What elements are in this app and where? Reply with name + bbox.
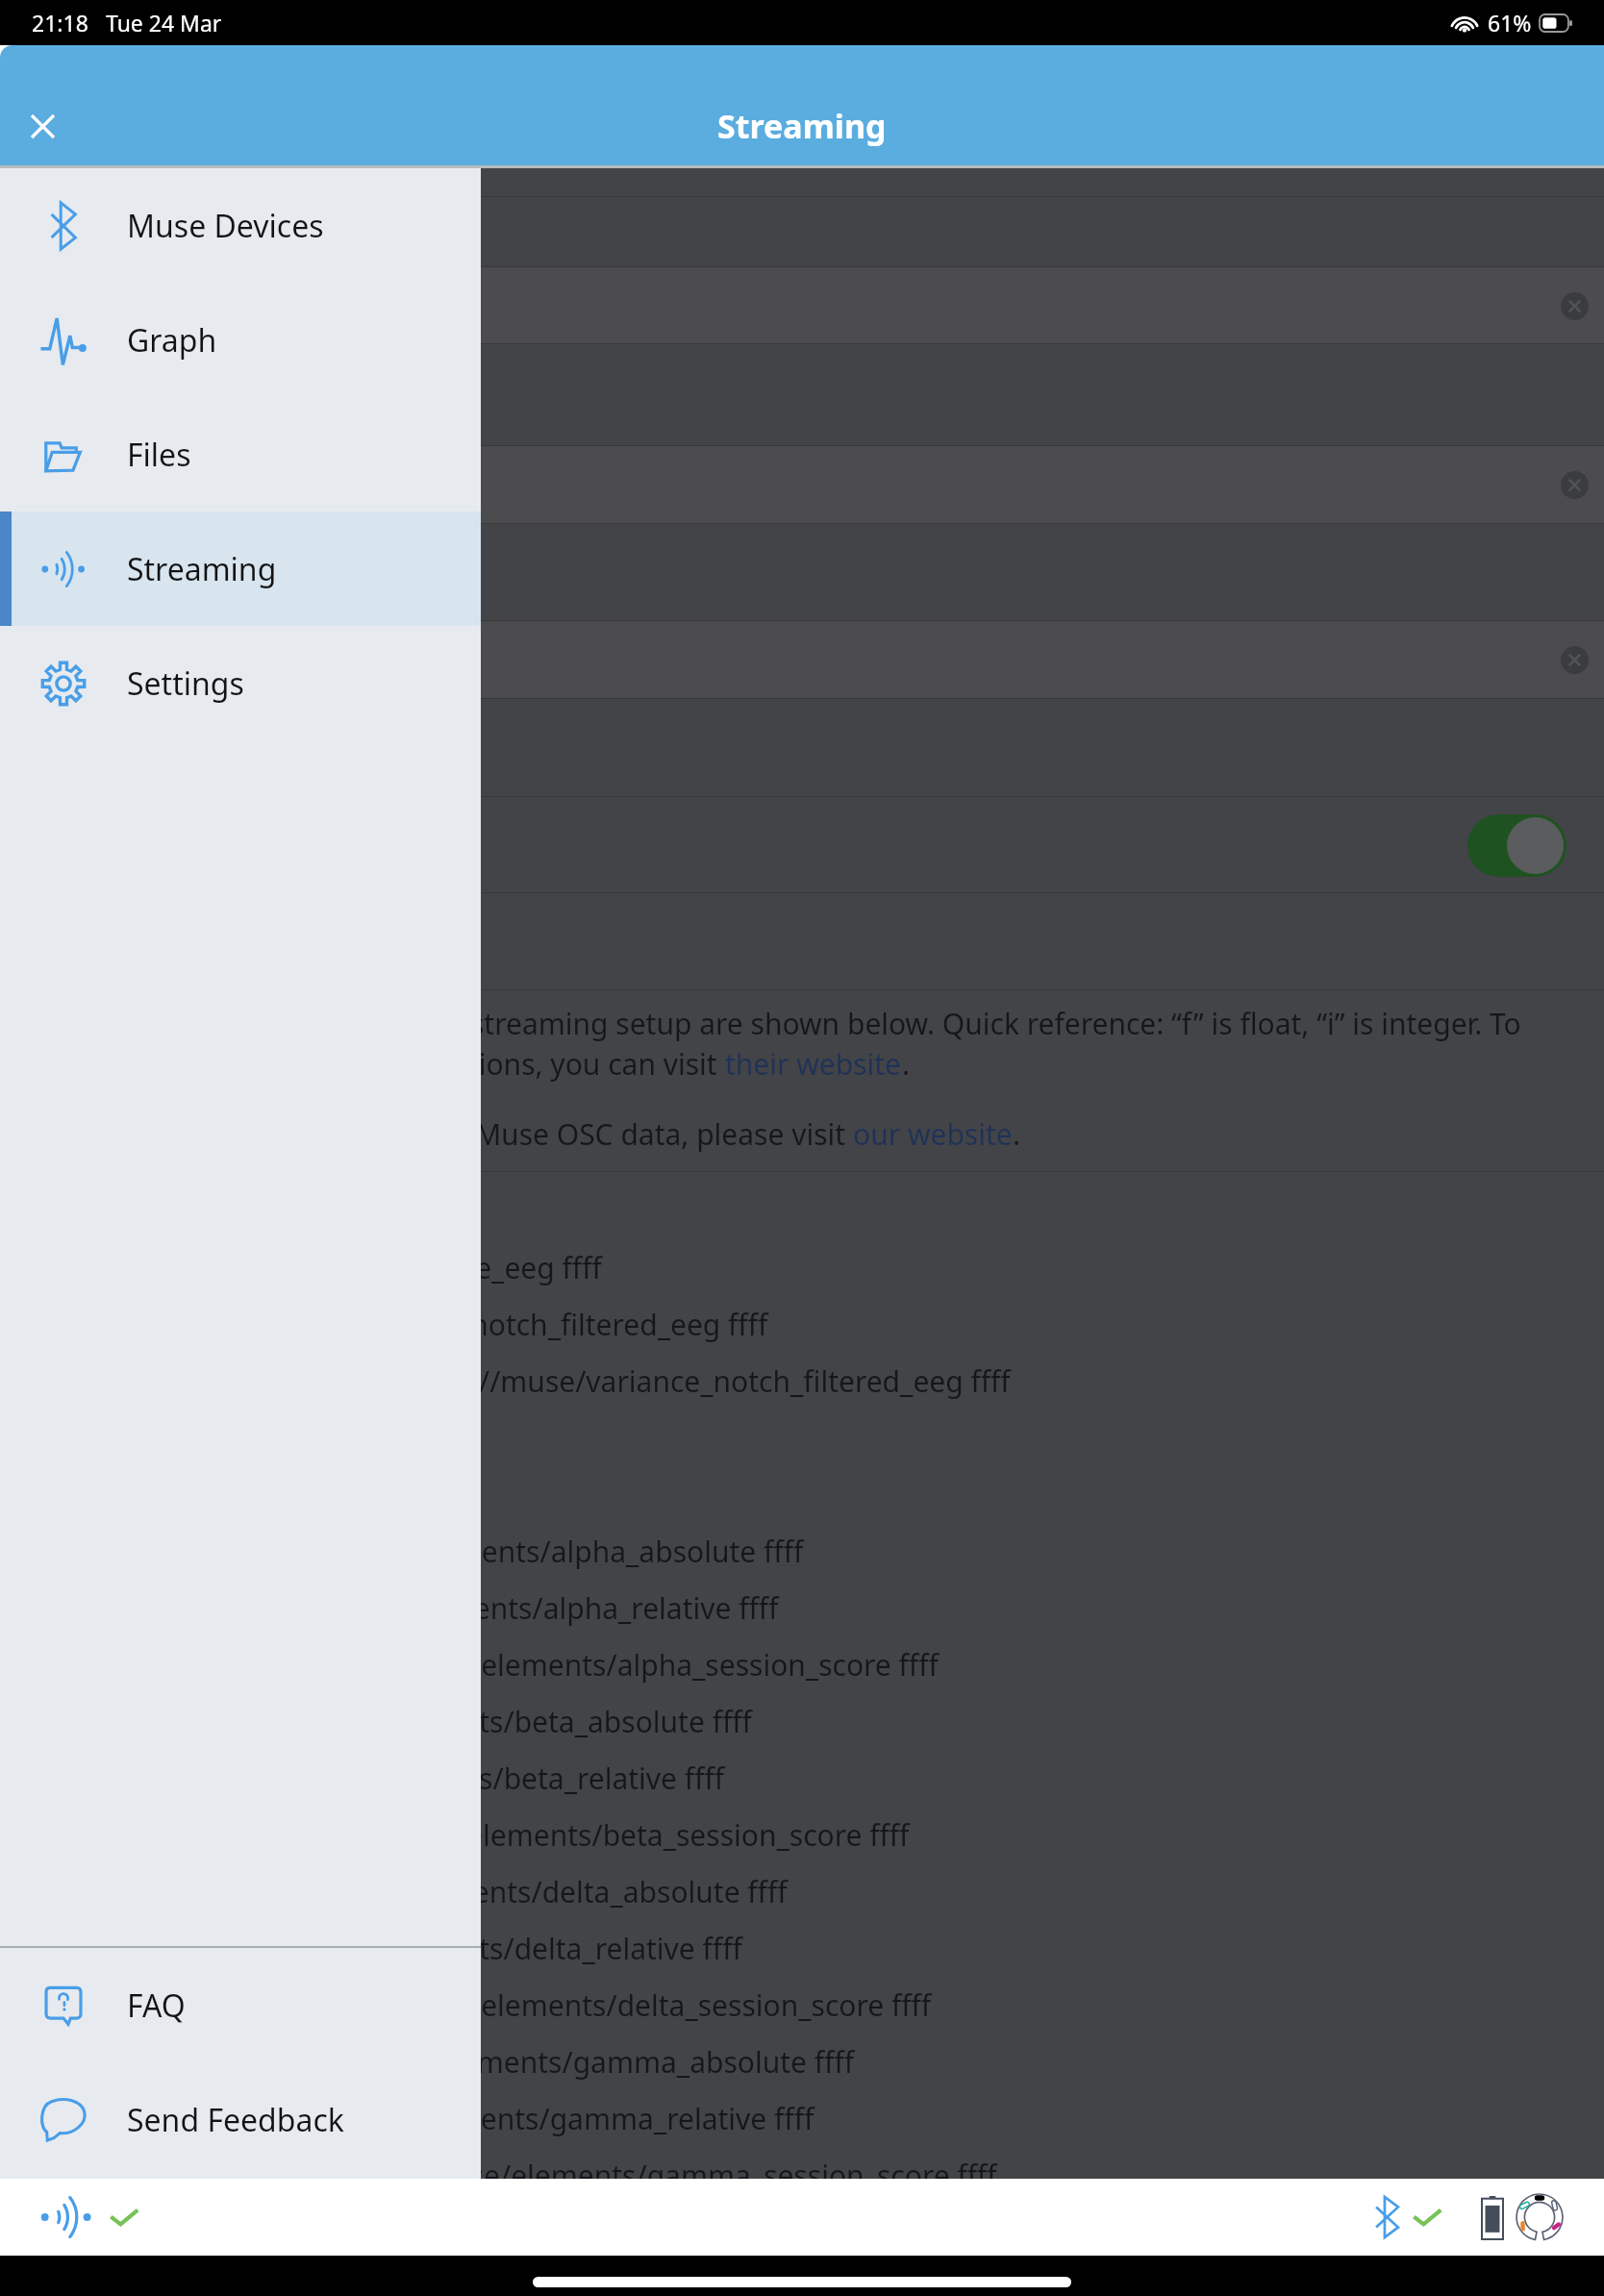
staticText: Settings xyxy=(127,662,244,705)
staticText: 21:18 xyxy=(32,8,88,37)
button[interactable]: their website xyxy=(725,1044,902,1084)
button[interactable]: Files xyxy=(0,397,481,512)
staticText: Muse Devices xyxy=(127,205,324,247)
staticText: Values in the current streaming setup ar… xyxy=(183,1004,1521,1043)
button[interactable]: Clear xyxy=(1561,471,1589,499)
button[interactable]: FAQ xyxy=(0,1948,481,2062)
staticText: 61% xyxy=(1488,8,1532,37)
staticText: /muse/variance_eeg ffff xyxy=(281,1248,602,1287)
staticText: FAQ xyxy=(127,1984,186,2027)
staticText: /muse/elements/alpha_session_score ffff xyxy=(385,1645,939,1685)
staticText: /muse/elements/delta_absolute ffff xyxy=(310,1872,788,1911)
button[interactable]: Send Feedback xyxy=(0,2062,481,2177)
staticText: Graph xyxy=(127,319,217,362)
button[interactable]: Close xyxy=(13,96,72,156)
staticText: For more details on the Muse OSC data, p… xyxy=(152,1114,853,1154)
button[interactable]: Clear xyxy=(1561,646,1589,674)
button[interactable]: our website xyxy=(853,1114,1013,1154)
staticText: /muse/elements/gamma_absolute ffff xyxy=(340,2042,855,2082)
staticText: learn more about OSC definitions, you ca… xyxy=(84,1044,725,1084)
staticText: Streaming xyxy=(127,548,277,590)
button[interactable]: Clear xyxy=(1561,292,1589,320)
staticText: /muse/elements/alpha_relative ffff xyxy=(311,1588,779,1628)
staticText: /muse/elements/beta_absolute ffff xyxy=(282,1702,752,1741)
staticText: //muse/variance_notch_filtered_eeg ffff xyxy=(479,1361,1011,1401)
staticText: . xyxy=(902,1044,911,1084)
staticText: /muse/elements/gamma_session_score ffff xyxy=(414,2156,997,2179)
button[interactable]: Settings xyxy=(0,626,481,740)
button[interactable]: Toggle xyxy=(1467,814,1566,877)
staticText: . xyxy=(1013,1114,1021,1154)
staticText: /muse/elements/delta_session_score ffff xyxy=(385,1985,932,2025)
staticText: Streaming xyxy=(717,104,887,148)
staticText: Tue 24 Mar xyxy=(106,8,222,37)
staticText: /muse/elements/beta_session_score ffff xyxy=(370,1815,910,1855)
staticText: /muse/elements/beta_relative ffff xyxy=(271,1759,725,1798)
button[interactable]: Streaming xyxy=(0,512,481,626)
button[interactable]: Graph xyxy=(0,283,481,397)
staticText: /muse/elements/gamma_relative ffff xyxy=(317,2099,815,2138)
staticText: /muse/notch_filtered_eeg ffff xyxy=(374,1305,768,1344)
staticText: Files xyxy=(127,434,191,476)
button[interactable]: Muse Devices xyxy=(0,168,481,283)
staticText: /muse/elements/delta_relative ffff xyxy=(282,1929,742,1968)
staticText: /muse/elements/alpha_absolute ffff xyxy=(318,1532,804,1571)
staticText: Send Feedback xyxy=(127,2099,344,2141)
